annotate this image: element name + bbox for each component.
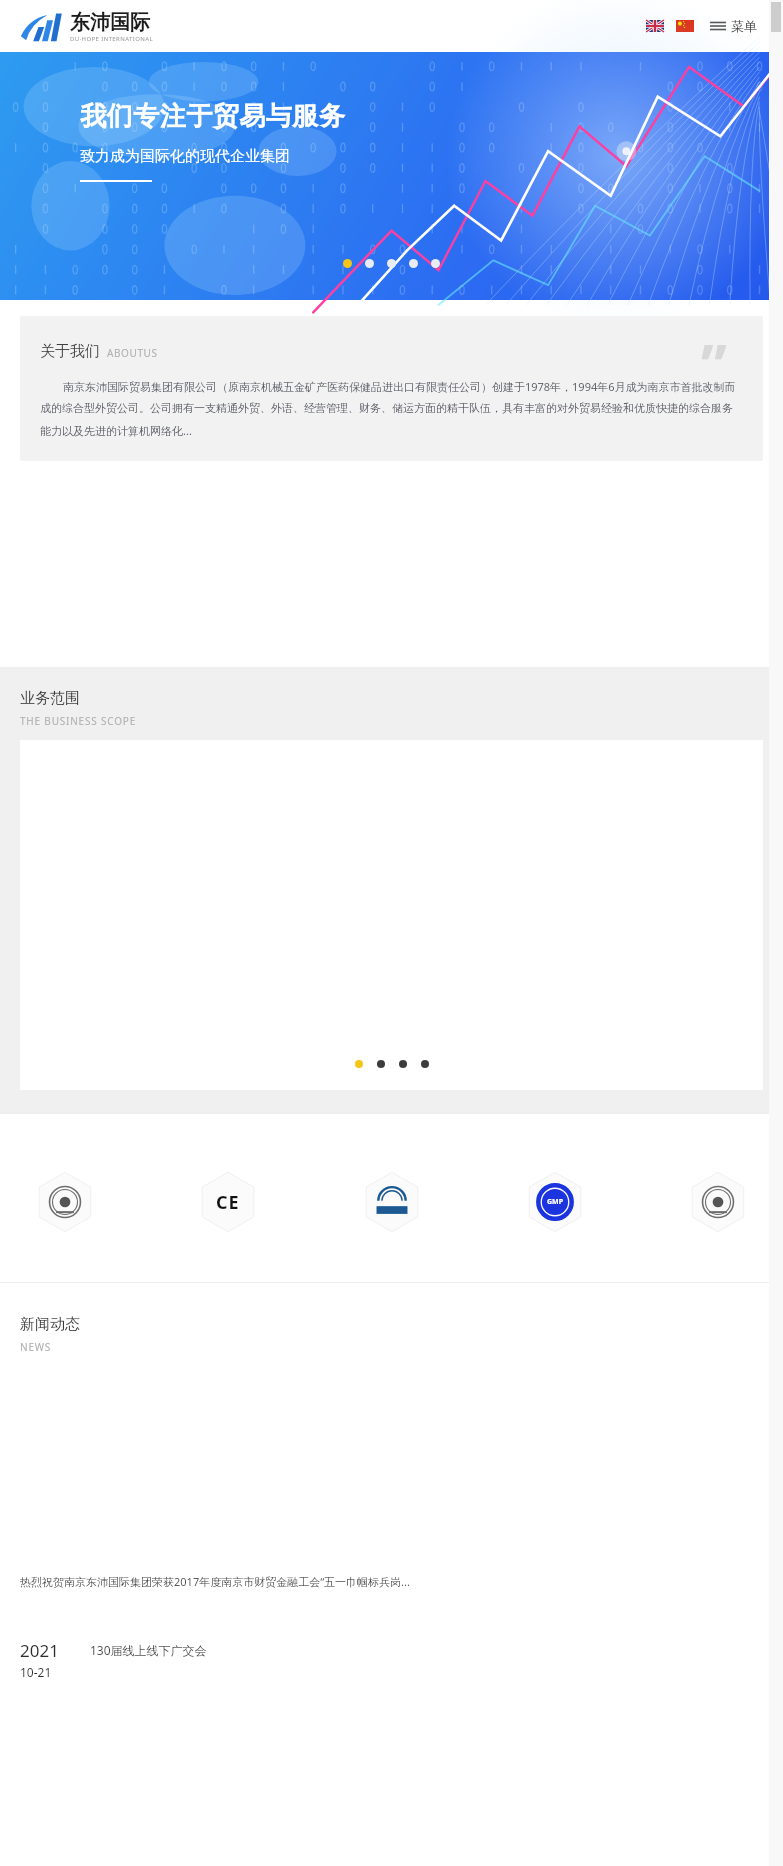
- button[interactable]: Slide 5: [431, 259, 440, 268]
- button[interactable]: Certification 1: [34, 1171, 96, 1233]
- button[interactable]: Slide 2: [365, 259, 374, 268]
- staticText: 2021: [20, 1639, 59, 1662]
- button[interactable]: Certification 4: [524, 1171, 586, 1233]
- staticText: 130届线上线下广交会: [90, 1642, 207, 1658]
- staticText: 业务范围: [20, 689, 80, 708]
- staticText: NEWS: [20, 1340, 52, 1354]
- button[interactable]: Page 1: [355, 1060, 363, 1068]
- button[interactable]: 东沛国际: [20, 9, 153, 43]
- staticText: 菜单: [731, 18, 757, 34]
- button[interactable]: Page 2: [377, 1060, 385, 1068]
- button[interactable]: Certification 3: [361, 1171, 423, 1233]
- staticText: 关于我们: [40, 342, 100, 361]
- staticText: 南京东沛国际贸易集团有限公司（原南京机械五金矿产医药保健品进出口有限责任公司）创…: [40, 379, 743, 439]
- staticText: ABOUTUS: [107, 346, 158, 360]
- staticText: DU·HOPE INTERNATIONAL: [70, 35, 153, 43]
- button[interactable]: English: [646, 20, 664, 32]
- staticText: GMP: [547, 1197, 564, 1207]
- button[interactable]: Page 1: [20, 740, 763, 1090]
- staticText: 10-21: [20, 1664, 52, 1680]
- staticText: CE: [216, 1190, 240, 1215]
- button[interactable]: Slide 4: [409, 259, 418, 268]
- button[interactable]: Page 4: [421, 1060, 429, 1068]
- button[interactable]: 菜单: [710, 18, 757, 34]
- button[interactable]: Slide 1: [343, 259, 352, 268]
- staticText: 东沛国际: [70, 10, 150, 35]
- staticText: 致力成为国际化的现代企业集团: [80, 147, 290, 166]
- button[interactable]: 热烈祝贺南京东沛国际集团荣获2017年度南京市财贸金融工会“五一巾帼标兵岗...: [20, 1574, 763, 1589]
- button[interactable]: Certification 2: [197, 1171, 259, 1233]
- staticText: THE BUSINESS SCOPE: [20, 714, 136, 728]
- button[interactable]: 2021: [20, 1639, 763, 1680]
- button[interactable]: 中文: [676, 20, 694, 32]
- staticText: 我们专注于贸易与服务: [80, 100, 345, 133]
- button[interactable]: Slide 3: [387, 259, 396, 268]
- staticText: 新闻动态: [20, 1315, 80, 1334]
- staticText: ”: [701, 324, 727, 403]
- button[interactable]: ”: [20, 316, 763, 461]
- button[interactable]: Page 3: [399, 1060, 407, 1068]
- button[interactable]: Certification 5: [687, 1171, 749, 1233]
